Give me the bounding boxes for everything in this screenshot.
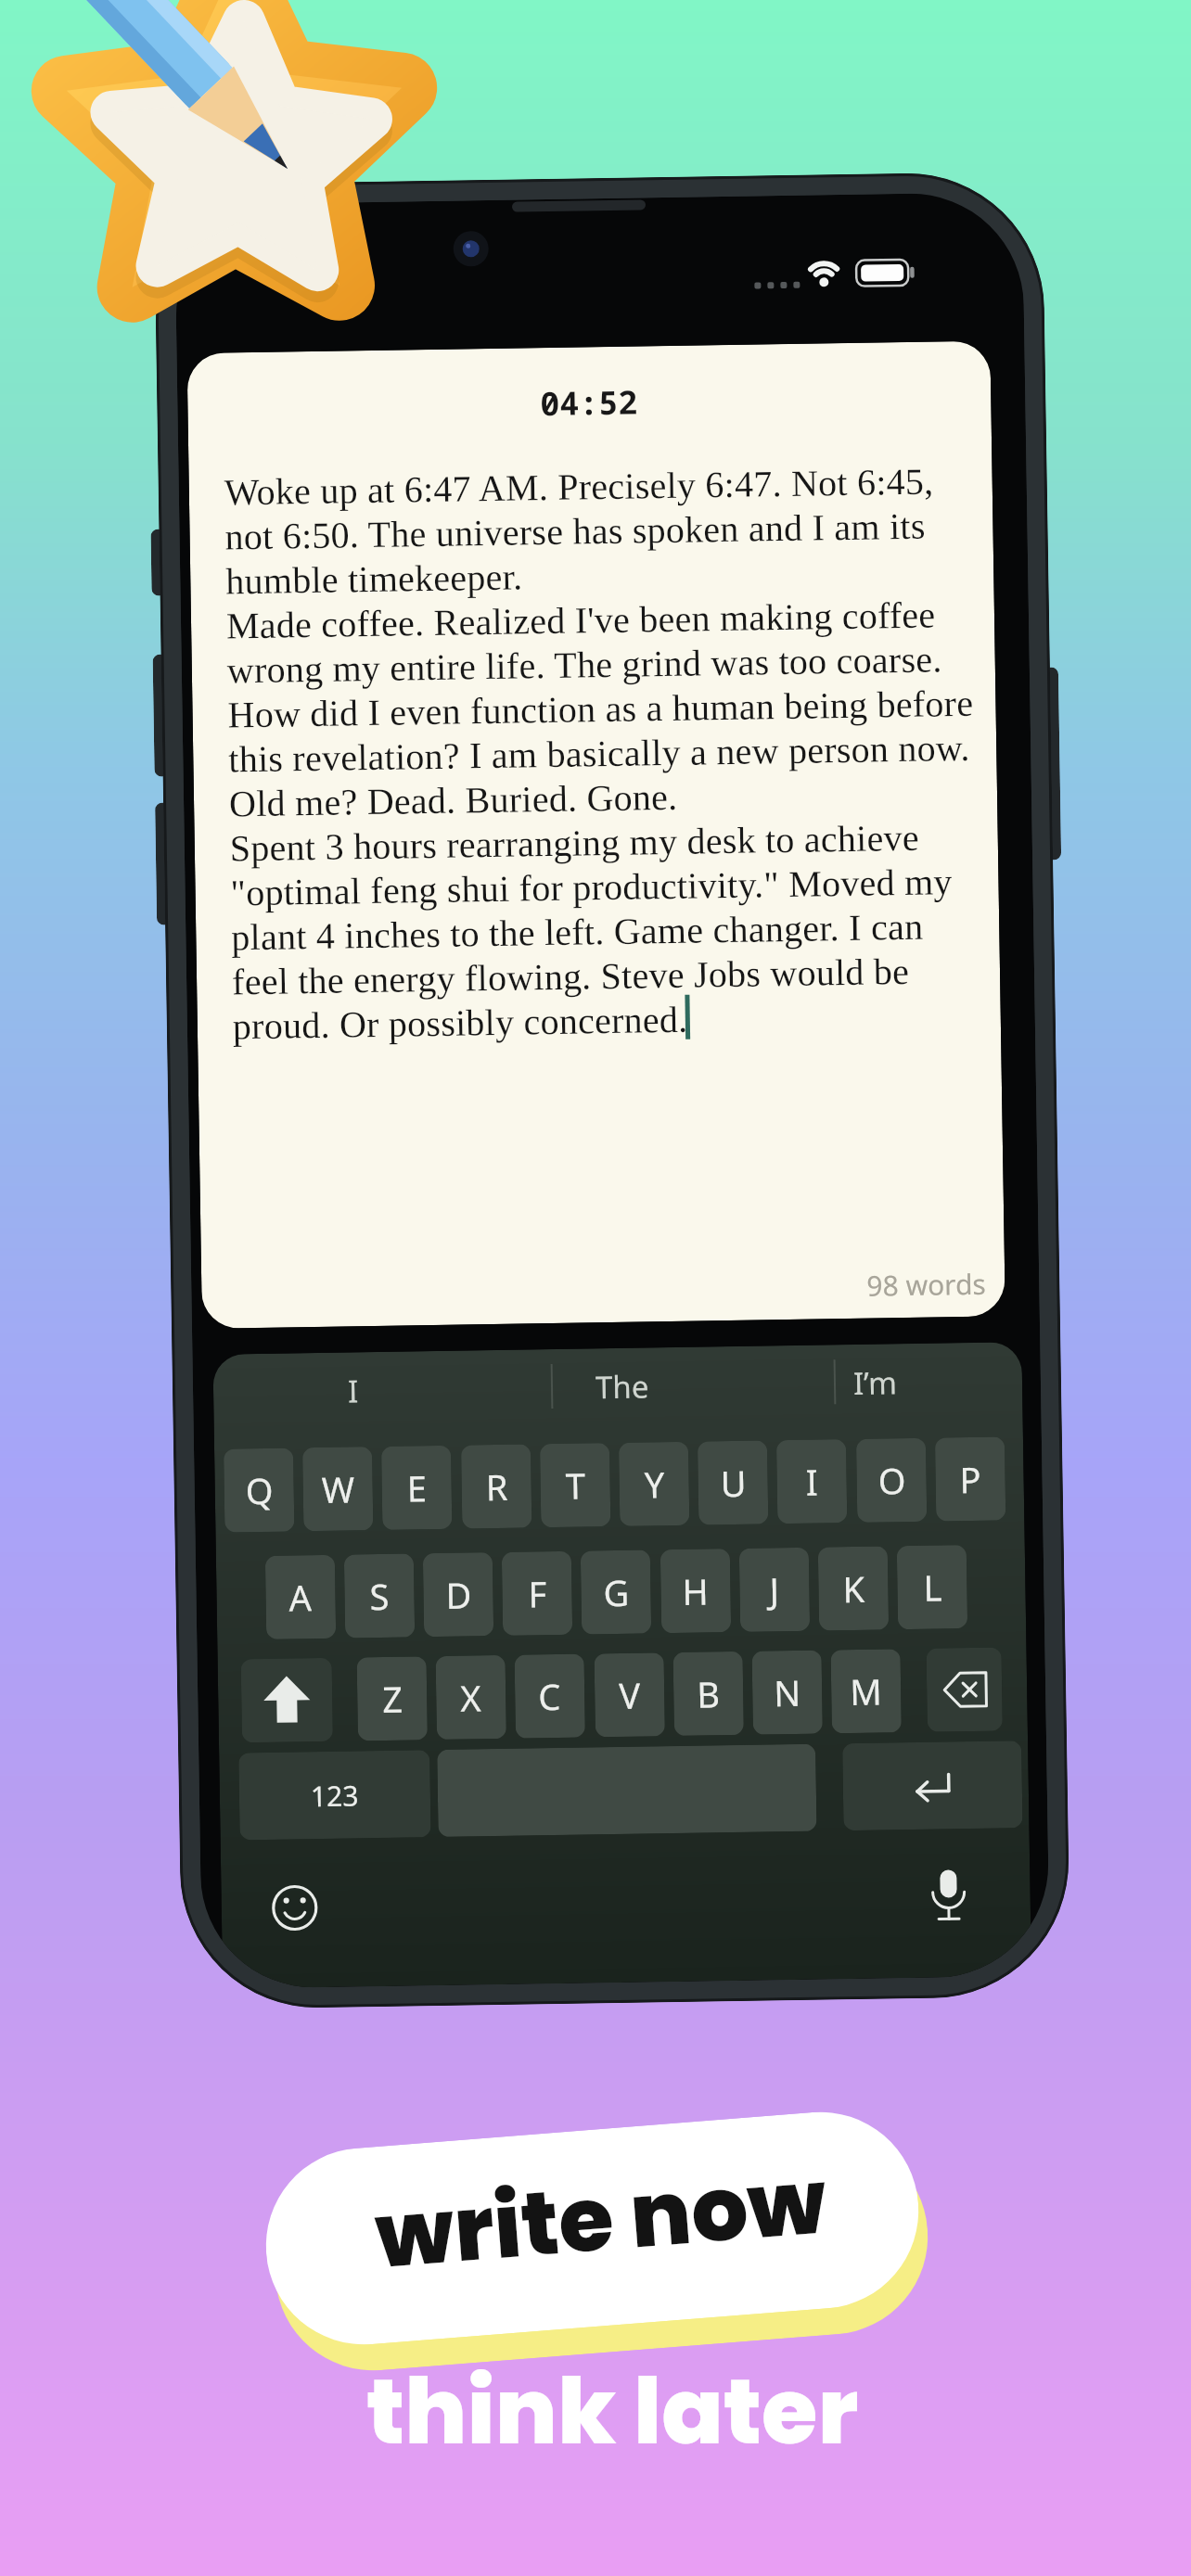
staticText: think later bbox=[366, 2348, 859, 2475]
button[interactable]: I bbox=[297, 1366, 410, 1414]
staticText: G bbox=[603, 1568, 630, 1616]
button[interactable]: W bbox=[302, 1447, 373, 1531]
staticText: R bbox=[485, 1462, 508, 1511]
staticText: P bbox=[959, 1455, 981, 1503]
staticText: I’m bbox=[853, 1361, 897, 1404]
staticText: S bbox=[369, 1572, 389, 1620]
button[interactable]: M bbox=[831, 1649, 902, 1733]
staticText: W bbox=[321, 1465, 355, 1513]
button[interactable] bbox=[241, 1658, 333, 1743]
staticText: C bbox=[538, 1672, 562, 1720]
staticText: I bbox=[805, 1457, 818, 1506]
staticText: Q bbox=[245, 1466, 274, 1515]
button[interactable]: S bbox=[344, 1554, 415, 1638]
button[interactable]: R bbox=[461, 1444, 532, 1529]
staticText: 98 words bbox=[866, 1265, 987, 1304]
button[interactable]: J bbox=[739, 1547, 810, 1632]
button[interactable]: T bbox=[540, 1443, 611, 1528]
staticText: write now bbox=[371, 2139, 832, 2298]
button[interactable]: 123 bbox=[239, 1750, 431, 1840]
button[interactable]: C bbox=[514, 1654, 585, 1738]
staticText: M bbox=[849, 1667, 883, 1715]
button[interactable]: O bbox=[856, 1438, 927, 1523]
staticText: X bbox=[460, 1673, 482, 1722]
button[interactable] bbox=[842, 1741, 1023, 1831]
staticText: Woke up at 6:47 AM. Precisely 6:47. Not … bbox=[224, 460, 979, 1047]
button[interactable]: E bbox=[381, 1445, 452, 1530]
staticText: L bbox=[923, 1563, 942, 1611]
button[interactable]: U bbox=[698, 1440, 768, 1525]
button[interactable]: P bbox=[935, 1437, 1006, 1521]
button[interactable]: H bbox=[660, 1549, 731, 1633]
button[interactable]: X bbox=[436, 1655, 506, 1740]
staticText: The bbox=[595, 1365, 650, 1408]
button[interactable] bbox=[926, 1647, 1003, 1732]
button[interactable]: write now bbox=[259, 2105, 926, 2352]
button[interactable]: The bbox=[566, 1362, 678, 1410]
staticText: J bbox=[769, 1565, 780, 1614]
staticText: A bbox=[289, 1573, 312, 1621]
staticText: E bbox=[407, 1463, 428, 1512]
button[interactable]: I’m bbox=[819, 1358, 931, 1406]
button[interactable]: Q bbox=[224, 1448, 294, 1533]
button[interactable]: D bbox=[423, 1552, 494, 1637]
staticText: B bbox=[696, 1669, 720, 1718]
staticText: K bbox=[842, 1564, 865, 1613]
button[interactable]: G bbox=[580, 1550, 651, 1634]
button[interactable]: L bbox=[897, 1545, 968, 1630]
staticText: N bbox=[773, 1668, 801, 1717]
button[interactable]: B bbox=[673, 1651, 744, 1736]
staticText: H bbox=[682, 1567, 709, 1615]
button[interactable]: K bbox=[818, 1546, 889, 1631]
staticText: V bbox=[619, 1671, 641, 1719]
staticText: I bbox=[348, 1370, 359, 1412]
button[interactable]: A bbox=[265, 1555, 336, 1639]
button[interactable] bbox=[437, 1744, 817, 1837]
staticText: Z bbox=[382, 1674, 403, 1723]
staticText: 123 bbox=[310, 1776, 359, 1815]
button[interactable]: N bbox=[752, 1650, 823, 1735]
staticText: O bbox=[878, 1456, 906, 1505]
staticText: F bbox=[528, 1569, 547, 1618]
staticText: U bbox=[720, 1458, 747, 1507]
button[interactable]: I bbox=[776, 1439, 847, 1524]
staticText: T bbox=[565, 1461, 586, 1509]
staticText: D bbox=[445, 1570, 472, 1619]
button[interactable]: Y bbox=[619, 1442, 690, 1526]
staticText: 04:52 bbox=[540, 380, 639, 426]
button[interactable]: V bbox=[594, 1653, 665, 1737]
button[interactable]: Z bbox=[357, 1656, 428, 1741]
button[interactable]: F bbox=[502, 1551, 572, 1636]
staticText: Y bbox=[644, 1460, 665, 1508]
